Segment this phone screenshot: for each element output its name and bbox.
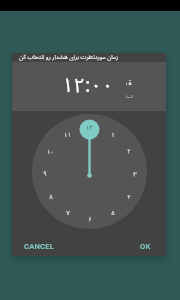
staticText: ۹ bbox=[43, 168, 47, 181]
staticText: ۱۱ bbox=[64, 129, 71, 142]
button[interactable]: ق bbox=[123, 75, 135, 85]
staticText: ۶ bbox=[88, 213, 92, 226]
button[interactable]: ۱۲:۰۰ bbox=[58, 62, 110, 104]
staticText: ق bbox=[126, 75, 132, 85]
button[interactable]: ب bbox=[123, 88, 135, 98]
staticText: CANCEL bbox=[24, 242, 54, 251]
staticText: ۸ bbox=[49, 191, 53, 204]
button[interactable]: CANCEL bbox=[20, 238, 58, 255]
staticText: ۷ bbox=[66, 207, 70, 220]
staticText: ۴ bbox=[127, 191, 131, 204]
staticText: ب bbox=[126, 88, 133, 98]
staticText: ۲ bbox=[127, 146, 131, 159]
staticText: ۵ bbox=[111, 207, 115, 220]
staticText: زمان موردنظرت برای هشدار رو انتخاب کن bbox=[19, 53, 119, 64]
button[interactable]: OK bbox=[136, 238, 155, 255]
staticText: ۱ bbox=[111, 129, 115, 142]
staticText: ۱۰ bbox=[47, 146, 54, 159]
staticText: ۱۲:۰۰ bbox=[62, 65, 114, 107]
staticText: ۳ bbox=[133, 168, 137, 181]
staticText: OK bbox=[140, 242, 151, 251]
staticText: ۱۲ bbox=[86, 122, 93, 135]
other: Clock face, 12 o'clock selected bbox=[32, 114, 147, 229]
